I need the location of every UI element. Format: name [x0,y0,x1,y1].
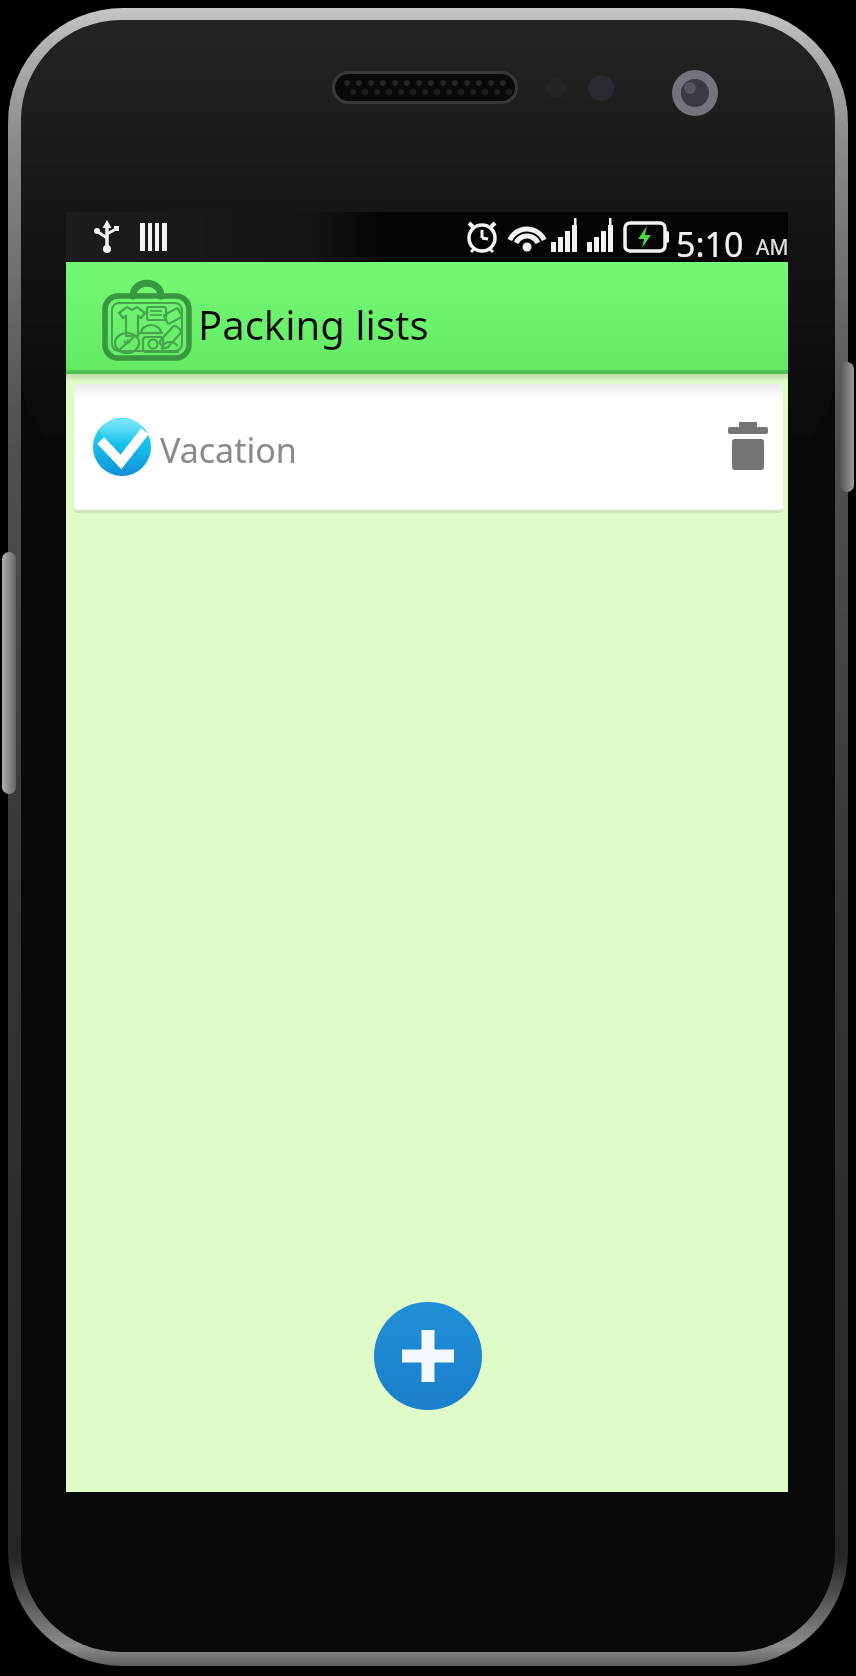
button[interactable]: Vacation [74,384,783,510]
staticText: Packing lists [198,297,429,351]
button[interactable] [66,262,788,374]
button[interactable] [722,420,774,476]
staticText: 5:10 [676,221,744,267]
staticText: Vacation [160,427,297,473]
button[interactable] [374,1302,482,1410]
staticText: AM [756,233,789,262]
button[interactable] [84,409,160,485]
